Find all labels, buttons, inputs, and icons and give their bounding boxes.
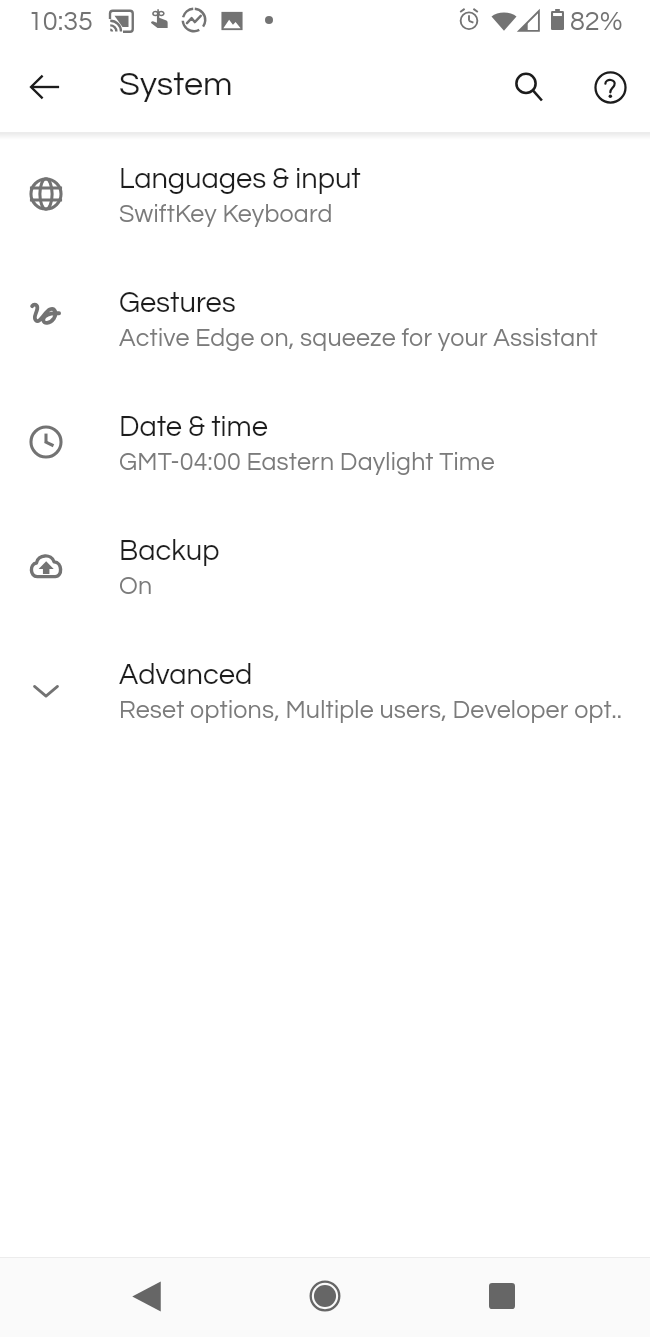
button[interactable]: Backup xyxy=(0,505,650,629)
staticText: Active Edge on, squeeze for your Assista… xyxy=(119,325,598,351)
button[interactable]: Help xyxy=(581,58,639,116)
button[interactable]: Gestures xyxy=(0,257,650,381)
staticText: Gestures xyxy=(119,288,236,318)
staticText: Languages & input xyxy=(119,164,361,194)
button[interactable]: Recents xyxy=(472,1266,532,1326)
staticText: On xyxy=(119,573,153,599)
staticText: Reset options, Multiple users, Developer… xyxy=(119,697,623,723)
staticText: GMT-04:00 Eastern Daylight Time xyxy=(119,449,495,475)
staticText: Advanced xyxy=(119,660,253,690)
staticText: Date & time xyxy=(119,412,268,442)
button[interactable]: Back xyxy=(116,1266,176,1326)
button[interactable]: Back xyxy=(16,58,74,116)
staticText: SwiftKey Keyboard xyxy=(119,201,333,227)
staticText: 82% xyxy=(570,8,623,36)
staticText: Backup xyxy=(119,536,220,566)
button[interactable]: Home xyxy=(295,1266,355,1326)
button[interactable]: Date & time xyxy=(0,381,650,505)
button[interactable]: Search xyxy=(500,58,558,116)
button[interactable]: Languages & input xyxy=(0,133,650,257)
button[interactable]: Advanced xyxy=(0,629,650,753)
staticText: 10:35 xyxy=(28,8,93,36)
staticText: System xyxy=(119,67,233,102)
